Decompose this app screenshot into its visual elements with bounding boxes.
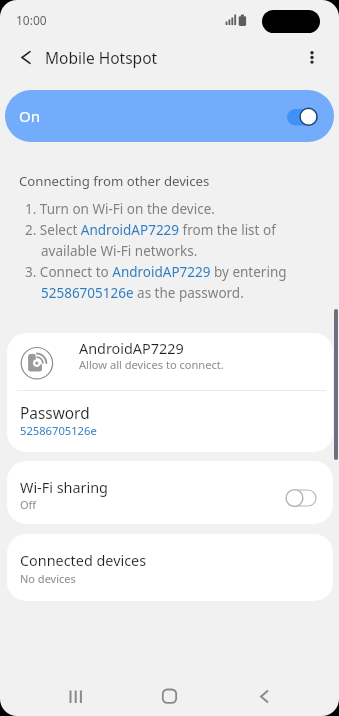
staticText: 52586705126e — [20, 423, 97, 438]
button[interactable] — [10, 44, 38, 72]
staticText: Password — [20, 403, 90, 424]
button[interactable]: On — [5, 90, 334, 142]
button[interactable] — [240, 674, 286, 716]
button[interactable]: Connected devices — [7, 534, 333, 601]
staticText: AndroidAP7229 — [79, 339, 184, 359]
button[interactable] — [7, 333, 333, 390]
staticText: 1. Turn on Wi-Fi on the device. — [25, 200, 215, 218]
staticText: No devices — [20, 571, 76, 586]
staticText: Wi-Fi sharing — [20, 478, 108, 498]
button[interactable] — [146, 674, 192, 716]
button[interactable]: Wi-Fi sharing — [7, 461, 333, 524]
staticText: 52586705126e as the password. — [41, 284, 244, 302]
staticText: 3. Connect to AndroidAP7229 by entering — [25, 263, 287, 281]
staticText: Off — [20, 497, 37, 512]
staticText: On — [19, 106, 40, 126]
staticText: Mobile Hotspot — [45, 47, 158, 68]
button[interactable] — [300, 44, 326, 72]
button[interactable] — [52, 674, 98, 716]
staticText: Connected devices — [20, 551, 147, 571]
staticText: available Wi-Fi networks. — [41, 242, 198, 260]
staticText: 10:00 — [16, 12, 47, 28]
staticText: 2. Select AndroidAP7229 from the list of — [25, 221, 276, 239]
staticText: Connecting from other devices — [19, 172, 210, 190]
staticText: Allow all devices to connect. — [79, 357, 224, 372]
button[interactable] — [7, 393, 333, 452]
